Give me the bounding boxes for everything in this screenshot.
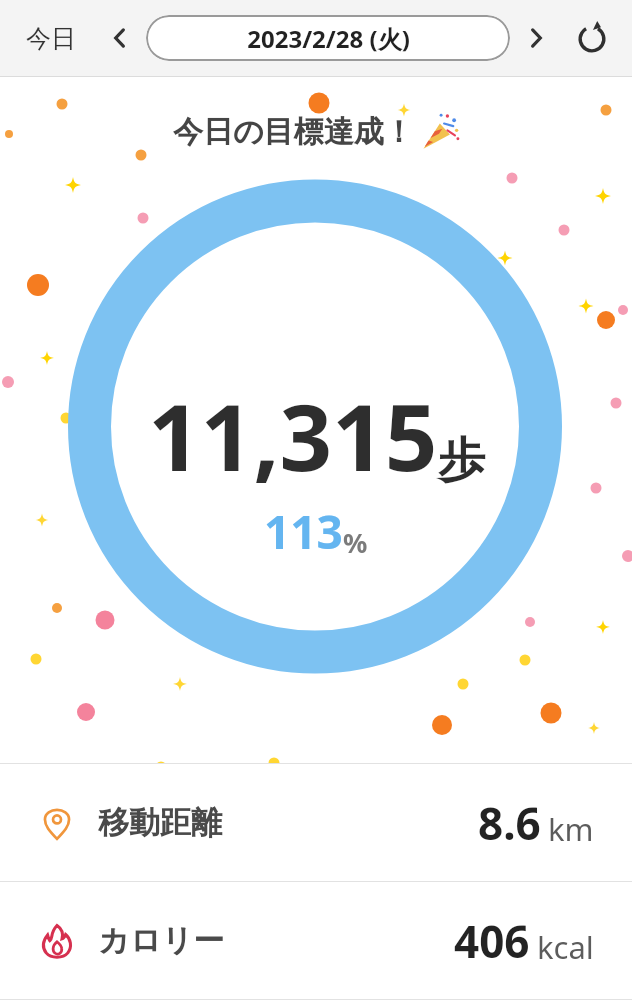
- staticText: 今日の目標達成！: [173, 113, 414, 151]
- staticText: カロリー: [98, 921, 225, 960]
- button[interactable]: 次の日: [514, 16, 558, 60]
- button[interactable]: 今日: [16, 17, 86, 60]
- staticText: %: [343, 524, 368, 561]
- button[interactable]: 移動距離: [0, 764, 632, 881]
- button[interactable]: 更新: [568, 14, 616, 62]
- staticText: km: [548, 808, 594, 850]
- staticText: 8.6: [478, 793, 541, 853]
- staticText: 移動距離: [98, 803, 222, 842]
- staticText: 歩: [438, 431, 485, 490]
- button[interactable]: 前の日: [98, 16, 142, 60]
- staticText: 今日: [26, 23, 76, 54]
- button[interactable]: 2023/2/28 (火): [146, 15, 510, 61]
- staticText: 2023/2/28 (火): [247, 22, 410, 55]
- button[interactable]: カロリー: [0, 882, 632, 999]
- staticText: 113: [264, 500, 343, 563]
- staticText: kcal: [537, 926, 594, 968]
- staticText: 11,315: [148, 373, 438, 498]
- staticText: 406: [454, 911, 530, 971]
